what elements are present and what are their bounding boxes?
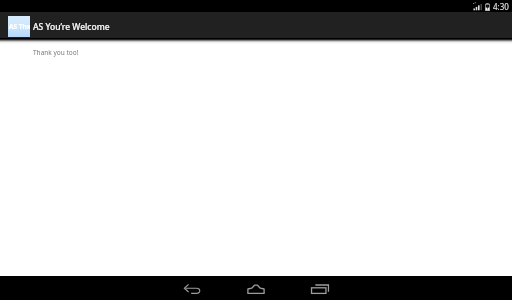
staticText: AS Thx: [9, 22, 30, 31]
button[interactable]: Recent apps: [304, 276, 336, 300]
staticText: Thank you too!: [33, 48, 79, 57]
staticText: AS You’re Welcome: [33, 21, 110, 33]
button[interactable]: App icon: [8, 16, 30, 37]
staticText: 4:30: [493, 1, 509, 12]
button[interactable]: Back: [176, 276, 208, 300]
button[interactable]: Home: [240, 276, 272, 300]
